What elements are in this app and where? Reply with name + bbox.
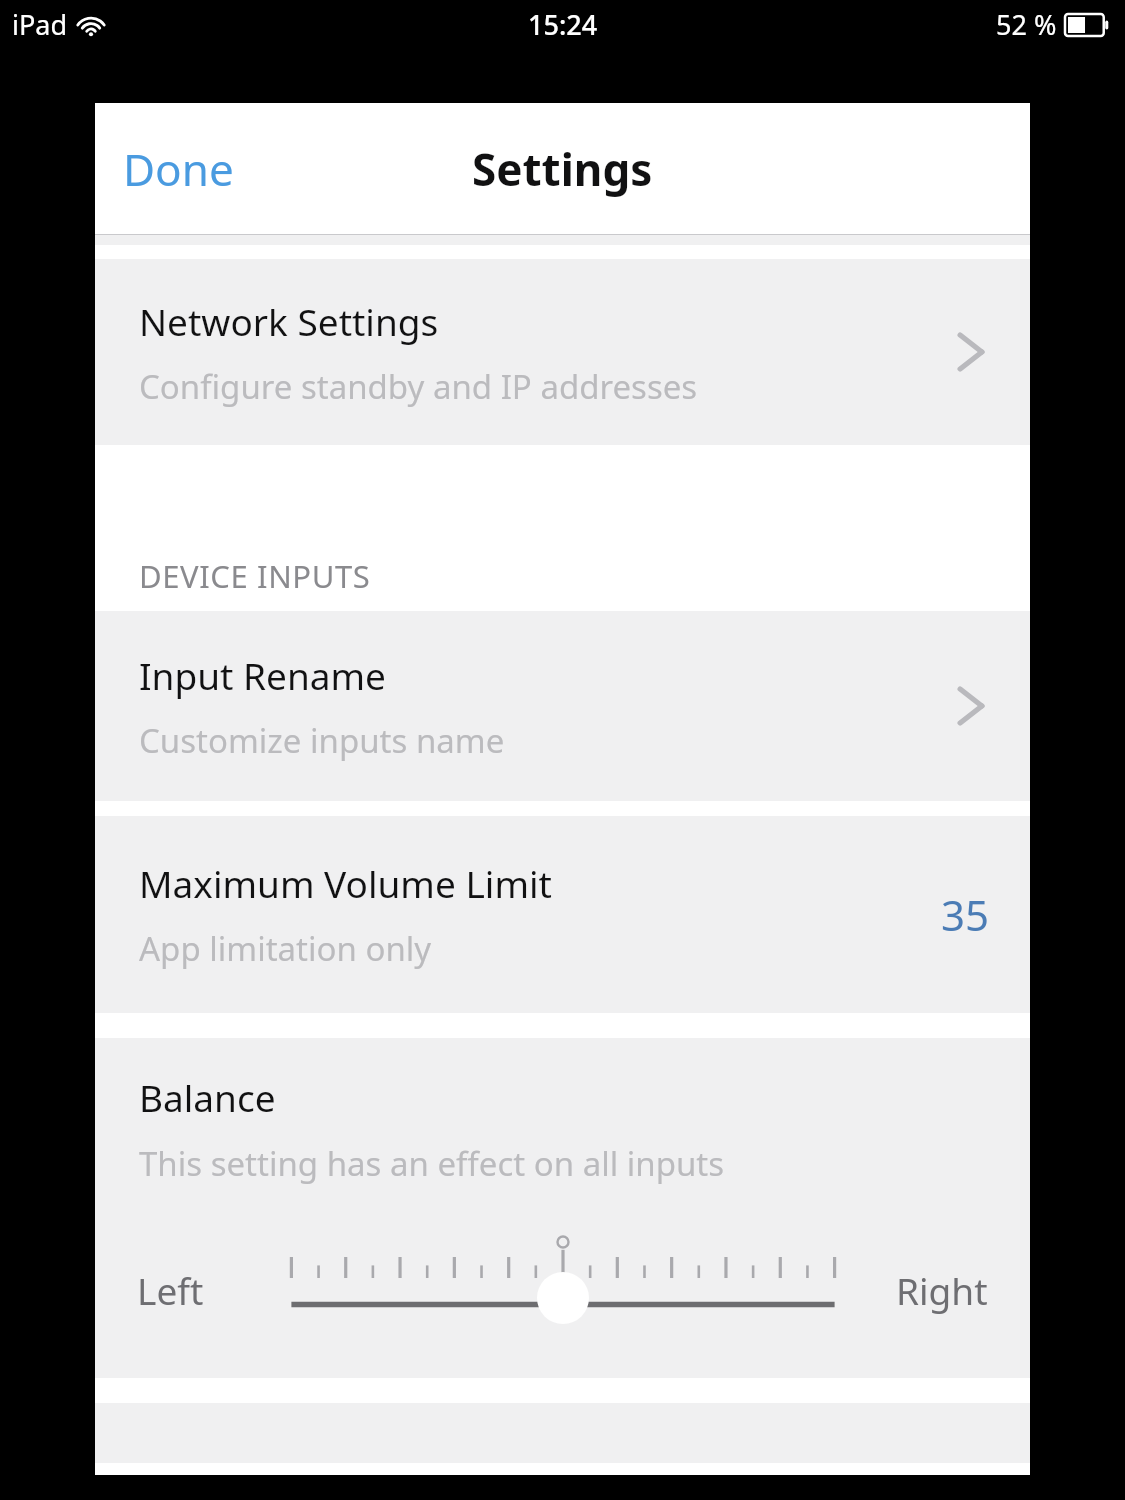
staticText: 52 %: [996, 6, 1057, 43]
staticText: Done: [123, 139, 234, 199]
button[interactable]: Input Rename: [95, 611, 1030, 801]
staticText: Balance: [139, 1072, 276, 1122]
button[interactable]: Maximum Volume Limit: [95, 816, 1030, 1013]
staticText: Configure standby and IP addresses: [139, 364, 698, 409]
other: Network Settings: [954, 327, 988, 377]
staticText: Maximum Volume Limit: [139, 858, 552, 908]
button[interactable]: Balance slider: [283, 1230, 843, 1350]
staticText: This setting has an effect on all inputs: [139, 1141, 725, 1186]
staticText: 15:24: [528, 6, 598, 43]
staticText: App limitation only: [139, 926, 432, 971]
staticText: iPad: [12, 6, 68, 43]
button[interactable]: Network Settings: [95, 259, 1030, 445]
staticText: Settings: [472, 139, 653, 199]
staticText: Right: [896, 1265, 988, 1315]
staticText: Left: [137, 1265, 204, 1315]
other: Input Rename: [954, 681, 988, 731]
staticText: 35: [941, 886, 990, 943]
staticText: DEVICE INPUTS: [139, 555, 371, 597]
button[interactable]: Done: [95, 125, 254, 213]
staticText: Customize inputs name: [139, 718, 505, 763]
staticText: Input Rename: [139, 650, 386, 700]
staticText: Network Settings: [139, 296, 439, 346]
